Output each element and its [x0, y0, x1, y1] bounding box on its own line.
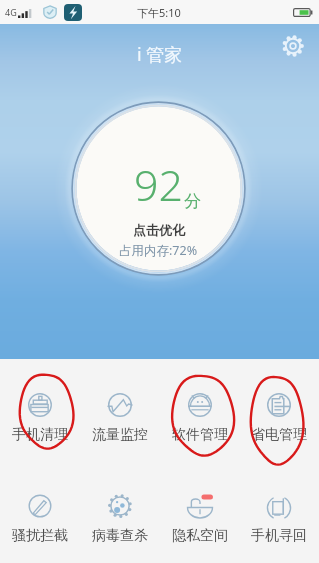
button[interactable]: 病毒查杀	[80, 494, 160, 563]
staticText: i 管家	[137, 42, 183, 67]
staticText: 分	[184, 191, 201, 212]
button[interactable]: 软件管理	[160, 393, 240, 489]
staticText: 手机寻回	[251, 527, 307, 545]
button[interactable]: 骚扰拦截	[0, 494, 80, 563]
staticText: 手机清理	[12, 426, 68, 444]
button[interactable]: 隐私空间	[160, 494, 240, 563]
staticText: 流量监控	[92, 426, 148, 444]
button[interactable]: 手机清理	[0, 393, 80, 489]
staticText: 4G	[5, 6, 17, 18]
staticText: 隐私空间	[172, 527, 228, 545]
staticText: 占用内存:72%	[119, 242, 198, 259]
staticText: 省电管理	[251, 426, 307, 444]
staticText: 点击优化	[133, 222, 185, 238]
staticText: 下午5:10	[137, 5, 181, 20]
button[interactable]: Settings	[281, 34, 305, 58]
staticText: 92	[134, 155, 184, 214]
staticText: 病毒查杀	[92, 527, 148, 545]
button[interactable]: 省电管理	[239, 393, 319, 489]
button[interactable]: 92	[54, 84, 263, 293]
button[interactable]: 手机寻回	[239, 494, 319, 563]
staticText: 软件管理	[172, 426, 228, 444]
button[interactable]: 流量监控	[80, 393, 160, 489]
staticText: 骚扰拦截	[12, 527, 68, 545]
